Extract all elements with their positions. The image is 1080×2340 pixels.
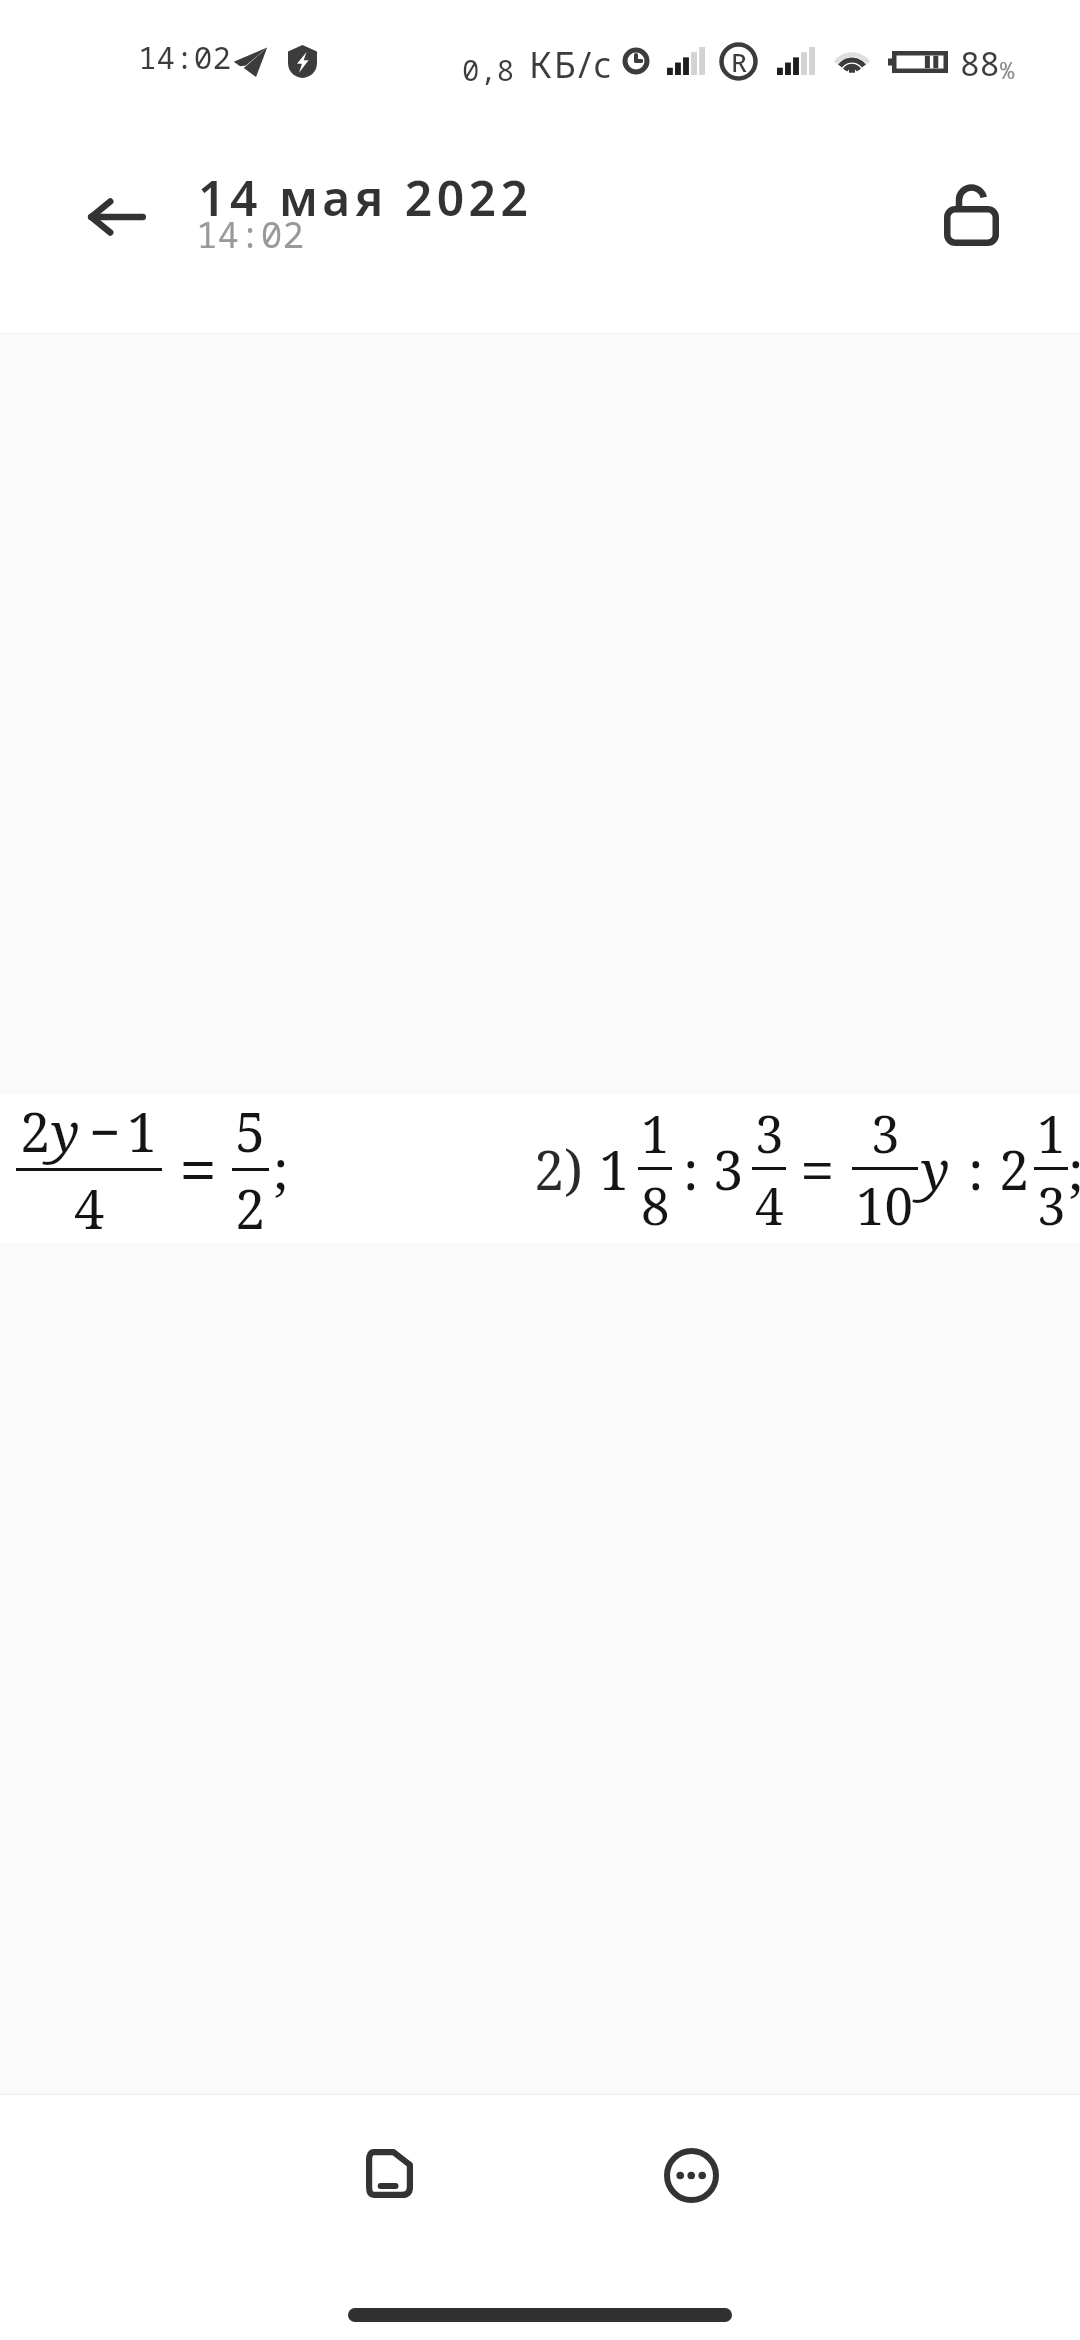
staticText: 10 (856, 1170, 914, 1239)
staticText: 2) (534, 1132, 583, 1206)
staticText: 14:02 (196, 210, 305, 259)
staticText: = (179, 1122, 218, 1215)
staticText: y (51, 1094, 80, 1168)
staticText: R (731, 45, 747, 79)
staticText: 1 (1037, 1098, 1066, 1167)
button[interactable]: Unlock (916, 160, 1026, 270)
button[interactable]: 14 мая 2022 (180, 160, 580, 270)
button[interactable]: Back (62, 162, 172, 272)
staticText: 1 (127, 1094, 158, 1168)
staticText: 4 (74, 1171, 105, 1242)
button[interactable]: More options (636, 2120, 746, 2230)
staticText: : (968, 1132, 984, 1206)
button[interactable]: Details (334, 2118, 444, 2228)
staticText: = (800, 1127, 835, 1211)
staticText: 88 (960, 41, 1000, 86)
staticText: 2 (235, 1171, 266, 1242)
staticText: 2 (20, 1094, 51, 1168)
staticText: − (89, 1094, 121, 1168)
staticText: 3 (755, 1098, 784, 1167)
staticText: 1 (599, 1132, 630, 1206)
staticText: 5 (235, 1094, 266, 1168)
staticText: 0,8 (462, 50, 515, 89)
staticText: 3 (713, 1132, 744, 1206)
staticText: y (921, 1132, 950, 1206)
staticText: 4 (755, 1170, 784, 1239)
staticText: 8 (641, 1170, 670, 1239)
staticText: 2 (999, 1132, 1030, 1206)
staticText: 14:02 (138, 36, 231, 78)
staticText: КБ/с (529, 40, 614, 89)
staticText: % (1000, 53, 1015, 86)
staticText: 14 мая 2022 (198, 165, 533, 230)
staticText: 1 (641, 1098, 670, 1167)
button[interactable]: Photo (0, 1095, 1080, 1243)
staticText: 3 (871, 1098, 900, 1167)
staticText: ; (273, 1131, 289, 1205)
staticText: 3 (1037, 1170, 1066, 1239)
staticText: ; (1068, 1132, 1080, 1206)
staticText: : (683, 1132, 699, 1206)
